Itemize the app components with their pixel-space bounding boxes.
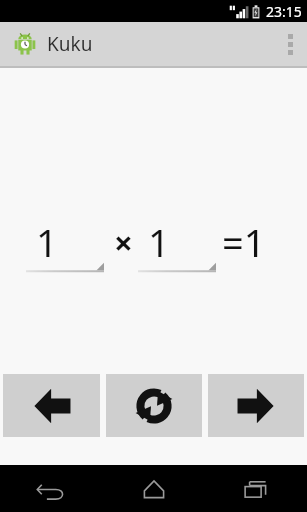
button[interactable]: Shuffle (106, 374, 202, 437)
staticText: × (114, 220, 133, 265)
staticText: 23:15 (266, 2, 302, 21)
button[interactable]: Back (0, 465, 103, 512)
button[interactable]: Recent apps (205, 465, 307, 512)
button[interactable]: Next (208, 374, 304, 437)
button[interactable]: Home (103, 465, 205, 512)
staticText: Kuku (47, 31, 93, 57)
button[interactable]: 1 (138, 216, 216, 276)
button[interactable]: More options (273, 22, 307, 66)
staticText: 1 (36, 216, 58, 264)
staticText: 1 (148, 216, 170, 264)
staticText: =1 (222, 216, 266, 268)
button[interactable]: 1 (26, 216, 104, 276)
button[interactable]: Previous (3, 374, 100, 437)
